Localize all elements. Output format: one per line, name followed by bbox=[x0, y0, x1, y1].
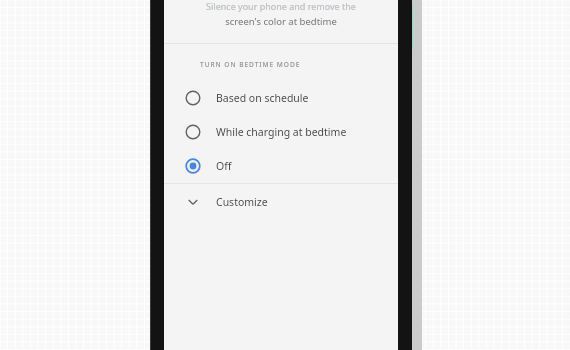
button[interactable]: Off bbox=[164, 149, 398, 183]
button[interactable]: Based on schedule bbox=[164, 81, 398, 115]
button[interactable]: While charging at bedtime bbox=[164, 115, 398, 149]
button[interactable]: Expand Customize bbox=[164, 184, 398, 220]
staticText: screen's color at bedtime bbox=[178, 15, 384, 28]
staticText: Based on schedule bbox=[216, 91, 309, 105]
staticText: Off bbox=[216, 159, 232, 173]
staticText: Silence your phone and remove the bbox=[178, 0, 384, 12]
staticText: While charging at bedtime bbox=[216, 125, 347, 139]
staticText: TURN ON BEDTIME MODE bbox=[200, 60, 301, 69]
other: Expand Customize bbox=[185, 194, 201, 210]
staticText: Customize bbox=[216, 195, 268, 209]
